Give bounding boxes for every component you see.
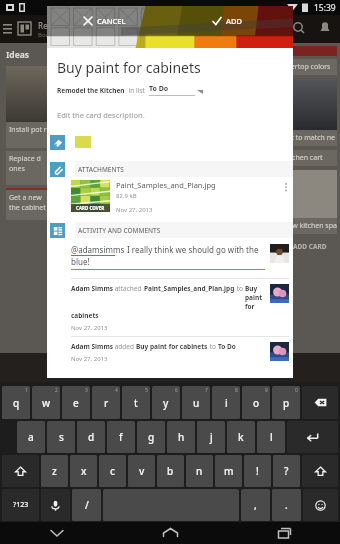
button[interactable]: Adam Simms <box>47 284 293 332</box>
button[interactable]: Activity and comments <box>50 223 65 238</box>
button[interactable]: To Do <box>149 84 203 96</box>
button[interactable]: f <box>107 421 135 453</box>
staticText: Install pot r <box>9 125 47 135</box>
button[interactable]: k <box>227 421 255 453</box>
button[interactable]: z <box>41 455 68 487</box>
button[interactable]: Shift <box>302 455 338 487</box>
staticText: . <box>285 498 288 512</box>
staticText: ntertop colors <box>284 62 331 72</box>
staticText: to <box>235 284 245 293</box>
button[interactable]: m <box>215 455 242 487</box>
staticText: 9 <box>265 387 268 394</box>
staticText: 3 <box>85 387 88 394</box>
button[interactable]: Recent apps <box>227 522 340 544</box>
staticText: ?123 <box>13 500 29 510</box>
staticText: t <box>134 396 138 410</box>
button[interactable]: q <box>2 386 30 419</box>
button[interactable]: t <box>122 386 150 419</box>
staticText: new kitchen spa <box>284 221 337 231</box>
button[interactable]: g <box>137 421 165 453</box>
button[interactable]: l <box>257 421 285 453</box>
staticText: Buy paint for <box>245 284 265 311</box>
staticText: ? <box>284 464 289 478</box>
button[interactable]: Member avatar <box>270 342 289 361</box>
staticText: cet to match ne <box>284 133 336 143</box>
button[interactable]: a <box>17 421 45 453</box>
staticText: Remod <box>38 20 66 31</box>
staticText: 2 <box>55 387 58 394</box>
staticText: z <box>52 464 57 478</box>
staticText: g <box>148 430 155 444</box>
staticText: Nov 27, 2013 <box>116 206 153 214</box>
button[interactable]: ? <box>273 455 300 487</box>
button[interactable]: Enter <box>287 421 338 453</box>
button[interactable]: b <box>157 455 184 487</box>
staticText: CANCEL <box>97 16 126 26</box>
button[interactable]: o <box>242 386 270 419</box>
button[interactable]: v <box>128 455 155 487</box>
staticText: To Do <box>218 342 236 351</box>
button[interactable]: i <box>212 386 240 419</box>
button[interactable]: ! <box>244 455 271 487</box>
button[interactable]: e <box>62 386 90 419</box>
button[interactable]: h <box>167 421 195 453</box>
staticText: j <box>210 430 213 444</box>
staticText: s <box>59 430 64 444</box>
button[interactable]: Member avatar <box>270 284 289 303</box>
staticText: Ideas <box>6 49 30 61</box>
button[interactable]: CARD COVER <box>47 177 293 217</box>
button[interactable]: / <box>72 489 101 521</box>
button[interactable]: u <box>182 386 210 419</box>
staticText: a <box>28 430 34 444</box>
staticText: kitchen cart <box>284 153 323 163</box>
button[interactable]: Buy paint for cabinets <box>57 58 201 77</box>
button[interactable]: r <box>92 386 120 419</box>
button[interactable]: j <box>197 421 225 453</box>
button[interactable]: x <box>70 455 97 487</box>
staticText: x <box>81 464 87 478</box>
button[interactable]: , <box>241 489 270 521</box>
button[interactable]: ADD <box>170 12 293 30</box>
button[interactable]: Labels <box>50 135 65 150</box>
button[interactable]: w <box>32 386 60 419</box>
button[interactable]: Emoji <box>303 489 338 521</box>
button[interactable]: Member avatar <box>270 244 289 263</box>
staticText: n <box>196 464 203 478</box>
button[interactable]: . <box>272 489 301 521</box>
staticText: / <box>85 498 89 512</box>
button[interactable]: Backspace <box>302 386 338 419</box>
staticText: ! <box>256 464 259 478</box>
button[interactable]: Symbols <box>2 489 39 521</box>
button[interactable]: p <box>272 386 300 419</box>
staticText: o <box>253 396 260 410</box>
staticText: f <box>119 430 123 444</box>
button[interactable]: @adamsimms <box>71 244 265 270</box>
button[interactable]: n <box>186 455 213 487</box>
staticText: blue! <box>71 256 90 267</box>
button[interactable]: s <box>47 421 75 453</box>
staticText: u <box>193 396 200 410</box>
staticText: Nov 27, 2013 <box>71 355 108 363</box>
staticText: Paint_Samples_and_Plan.jpg <box>116 180 216 190</box>
button[interactable]: More options <box>279 180 293 194</box>
button[interactable]: Voice input <box>41 489 70 521</box>
button[interactable]: Shift <box>2 455 39 487</box>
button[interactable]: Edit the card description. <box>57 110 145 120</box>
staticText: i <box>225 396 228 410</box>
staticText: 5 <box>145 387 148 394</box>
button[interactable]: Hide keyboard <box>0 522 114 544</box>
staticText: I really think we should go with the <box>125 244 259 255</box>
button[interactable]: CANCEL <box>47 12 170 30</box>
staticText: e <box>73 396 79 410</box>
button[interactable]: c <box>99 455 126 487</box>
button[interactable]: Attachments <box>50 162 65 177</box>
button[interactable]: Adam Simms <box>47 342 293 363</box>
button[interactable]: d <box>77 421 105 453</box>
button[interactable]: Home <box>114 522 227 544</box>
button[interactable]: y <box>152 386 180 419</box>
staticText: Get a new the cabinet <box>9 193 46 213</box>
staticText: Replace d ones <box>9 154 41 174</box>
staticText: 6 <box>175 387 178 394</box>
